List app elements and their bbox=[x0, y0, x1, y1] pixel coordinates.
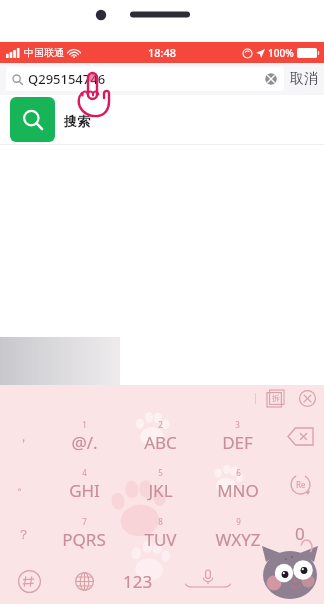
staticText: 2 bbox=[158, 419, 163, 430]
button[interactable]: Search bbox=[10, 97, 55, 142]
button[interactable]: 5 bbox=[122, 460, 199, 509]
button[interactable]: Symbols bbox=[0, 558, 58, 604]
staticText: 中 bbox=[265, 572, 279, 590]
staticText: WXYZ bbox=[215, 528, 261, 551]
button[interactable]: 6 bbox=[199, 460, 276, 509]
staticText: 123 bbox=[123, 570, 153, 593]
staticText: 7 bbox=[82, 516, 87, 527]
staticText: GHI bbox=[69, 479, 100, 502]
staticText: 搜索 bbox=[64, 113, 90, 129]
button[interactable]: ？ bbox=[0, 509, 46, 558]
button[interactable]: 7 bbox=[46, 509, 122, 558]
button[interactable]: 1 bbox=[46, 412, 122, 460]
staticText: ABC bbox=[144, 431, 177, 454]
button[interactable]: 中 bbox=[250, 558, 324, 604]
staticText: 1 bbox=[82, 419, 87, 430]
staticText: 拆 bbox=[272, 393, 280, 403]
button[interactable]: Close keyboard bbox=[299, 390, 316, 407]
button[interactable]: 2 bbox=[122, 412, 199, 460]
staticText: 取消 bbox=[290, 70, 318, 88]
staticText: /英 bbox=[279, 577, 292, 589]
staticText: 6 bbox=[236, 467, 241, 478]
staticText: ？ bbox=[17, 526, 30, 542]
button[interactable]: Voice input bbox=[166, 558, 250, 604]
staticText: 0 bbox=[295, 522, 305, 545]
staticText: TUV bbox=[144, 528, 177, 551]
staticText: PQRS bbox=[62, 528, 106, 551]
button[interactable]: 取消 bbox=[284, 67, 318, 91]
staticText: 8 bbox=[158, 516, 163, 527]
button[interactable]: Backspace bbox=[276, 412, 324, 460]
staticText: @/. bbox=[71, 431, 98, 454]
button[interactable]: 123 bbox=[110, 558, 166, 604]
button[interactable]: 8 bbox=[122, 509, 199, 558]
staticText: 100% bbox=[268, 46, 294, 60]
button[interactable]: Switch language bbox=[58, 558, 110, 604]
button[interactable]: Zero bbox=[276, 509, 324, 558]
staticText: DEF bbox=[222, 431, 253, 454]
staticText: 3 bbox=[235, 419, 240, 430]
button[interactable]: 4 bbox=[46, 460, 122, 509]
staticText: 4 bbox=[82, 467, 87, 478]
button[interactable]: Q295154746 bbox=[6, 67, 284, 91]
staticText: 中国联通 bbox=[24, 46, 64, 59]
staticText: 9 bbox=[236, 516, 241, 527]
staticText: 5 bbox=[158, 467, 163, 478]
staticText: Q295154746 bbox=[28, 70, 106, 88]
button[interactable]: Clear text bbox=[264, 72, 278, 86]
staticText: MNO bbox=[217, 479, 259, 502]
button[interactable]: 3 bbox=[199, 412, 276, 460]
button[interactable]: Split keyboard bbox=[267, 390, 284, 407]
button[interactable]: 9 bbox=[199, 509, 276, 558]
staticText: 。 bbox=[17, 477, 30, 493]
staticText: 18:48 bbox=[148, 45, 177, 60]
staticText: ， bbox=[17, 428, 30, 444]
staticText: JKL bbox=[148, 479, 173, 502]
staticText: Re bbox=[296, 479, 306, 490]
button[interactable]: Redo bbox=[276, 460, 324, 509]
